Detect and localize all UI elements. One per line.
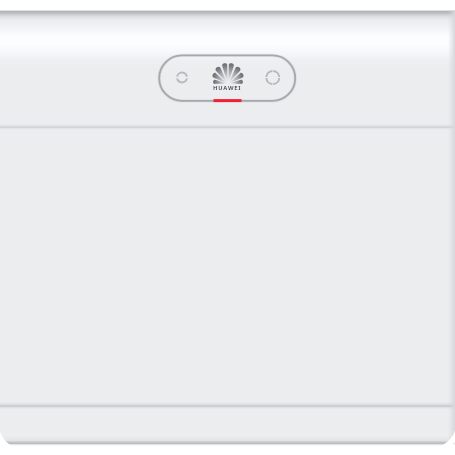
- button[interactable]: Huawei router product photo: [0, 0, 455, 455]
- staticText: HUAWEI: [213, 84, 242, 92]
